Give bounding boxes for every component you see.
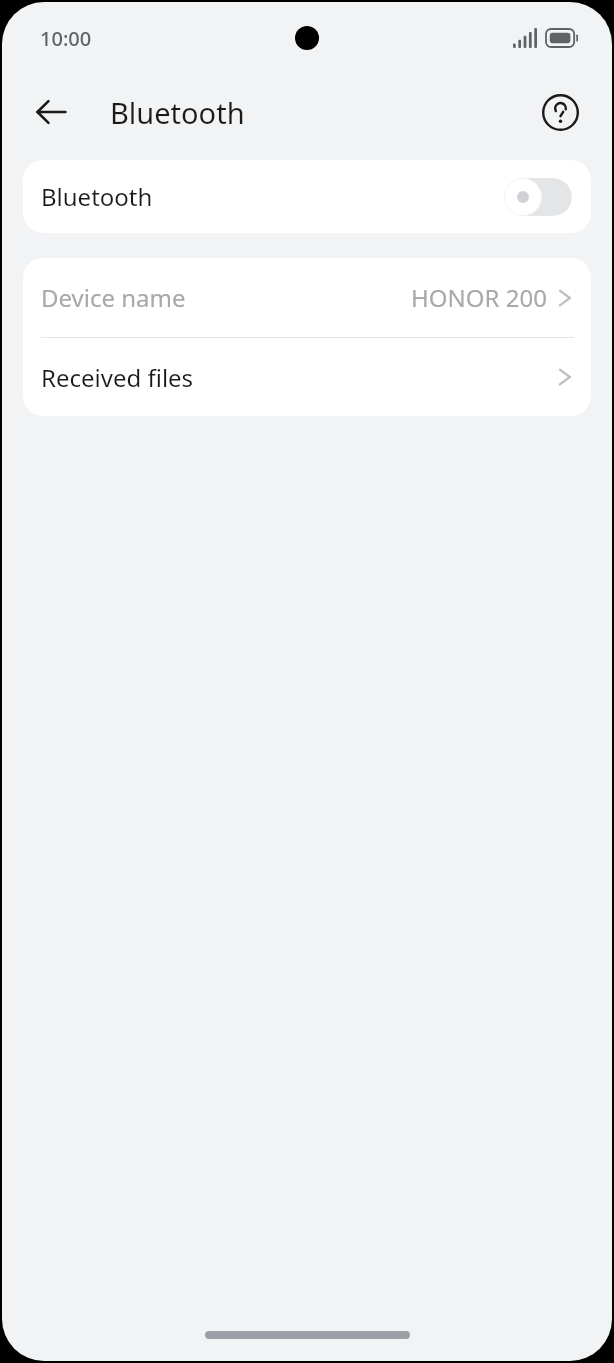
staticText: Bluetooth [41,180,153,213]
staticText: 10:00 [40,25,92,52]
button[interactable]: Device name [23,258,591,337]
button[interactable]: Help [535,87,585,137]
staticText: Bluetooth [110,93,245,132]
staticText: Received files [41,361,194,394]
staticText: HONOR 200 [411,281,547,314]
staticText: Device name [41,281,186,314]
button[interactable]: Back [23,84,79,140]
button[interactable]: Bluetooth toggle [504,178,572,216]
button[interactable]: Received files [23,338,591,416]
button[interactable]: Bluetooth [23,160,591,233]
